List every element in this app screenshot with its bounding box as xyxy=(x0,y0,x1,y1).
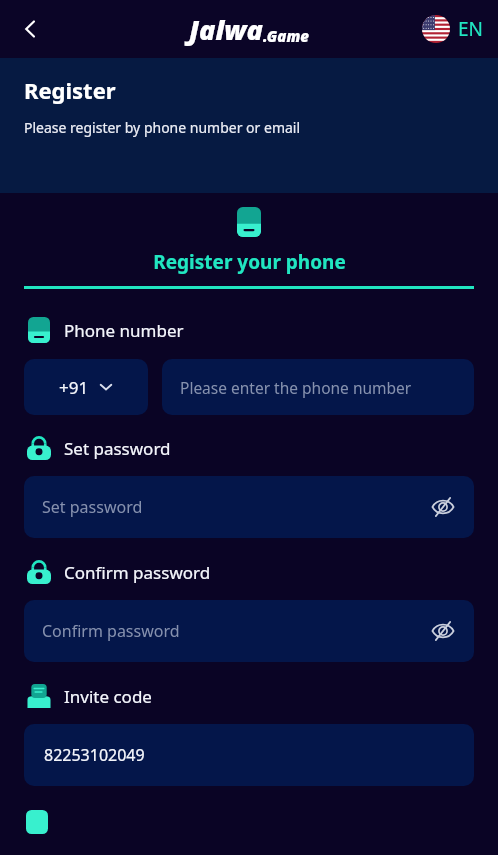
staticText: Set password xyxy=(42,496,143,518)
button[interactable]: Confirm password xyxy=(24,600,474,662)
staticText: Jalwa xyxy=(189,11,263,48)
staticText: Please register by phone number or email xyxy=(24,118,301,137)
staticText: Invite code xyxy=(64,685,152,708)
staticText: Confirm password xyxy=(64,561,211,584)
button[interactable]: Please enter the phone number xyxy=(162,359,474,415)
staticText: +91 xyxy=(59,376,89,399)
button[interactable]: Back xyxy=(8,7,52,51)
button[interactable]: Register your phone xyxy=(0,207,498,289)
staticText: Set password xyxy=(64,437,171,460)
staticText: EN xyxy=(458,16,484,42)
button[interactable]: +91 xyxy=(24,359,148,415)
button[interactable]: 82253102049 xyxy=(24,724,474,786)
button[interactable]: Show password xyxy=(426,490,460,524)
staticText: Confirm password xyxy=(42,620,180,642)
button[interactable]: EN xyxy=(422,15,484,43)
staticText: Register xyxy=(24,75,116,105)
button[interactable]: Show password xyxy=(426,614,460,648)
staticText: .Game xyxy=(263,26,309,46)
staticText: Please enter the phone number xyxy=(180,377,412,398)
button[interactable]: Set password xyxy=(24,476,474,538)
staticText: Phone number xyxy=(64,319,184,342)
staticText: Register your phone xyxy=(153,249,346,275)
staticText: 82253102049 xyxy=(44,744,145,766)
